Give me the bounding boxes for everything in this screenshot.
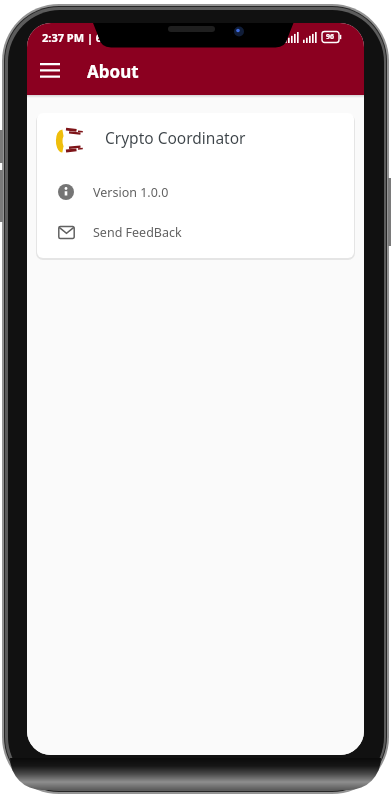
- staticText: 96: [326, 32, 335, 42]
- staticText: Send FeedBack: [93, 224, 182, 241]
- staticText: Version 1.0.0: [93, 184, 169, 201]
- staticText: 2:37 PM | 6G: [42, 30, 111, 45]
- staticText: Crypto Coordinator: [105, 127, 246, 148]
- button[interactable]: Send FeedBack: [58, 223, 354, 241]
- button[interactable]: Version 1.0.0: [58, 183, 354, 201]
- staticText: About: [87, 60, 139, 83]
- button[interactable]: [35, 56, 65, 86]
